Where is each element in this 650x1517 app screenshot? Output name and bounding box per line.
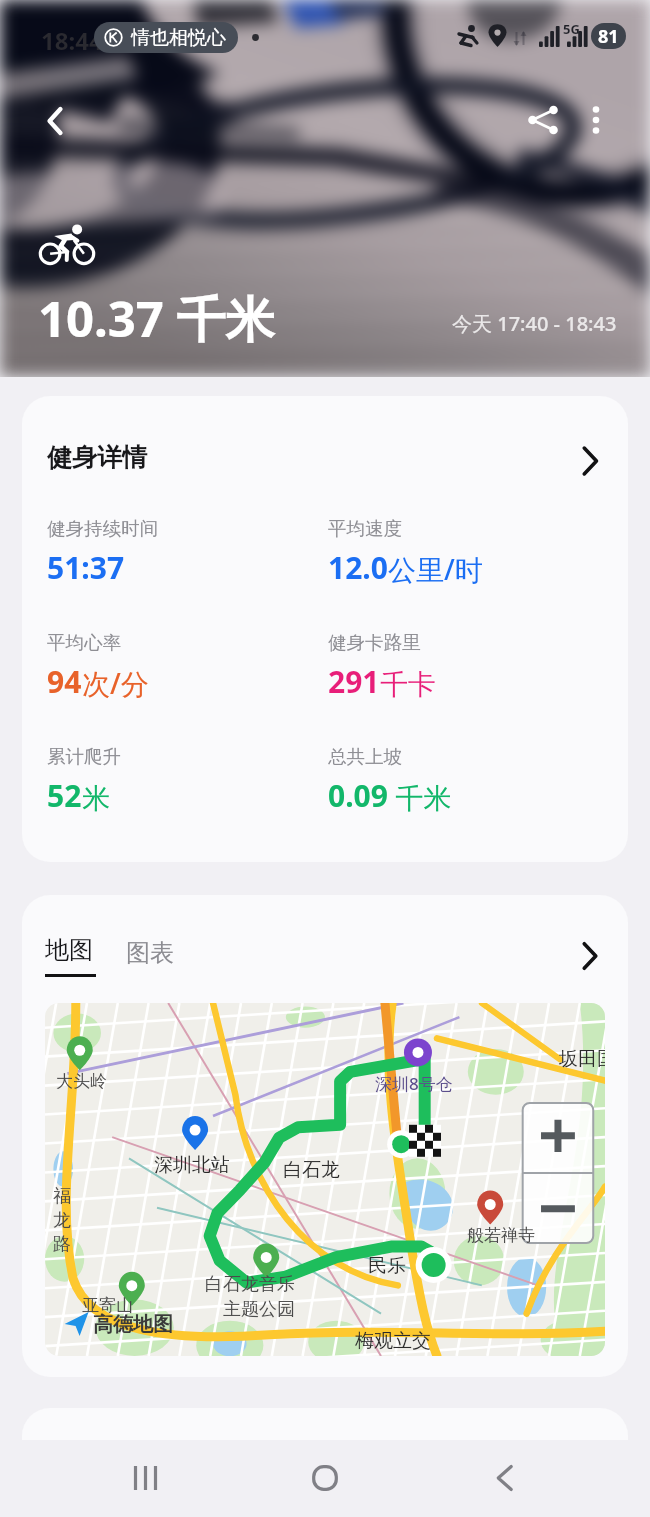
staticText: 地图 xyxy=(45,935,93,965)
staticText: 12.0 xyxy=(328,547,388,588)
staticText: 94 xyxy=(47,661,82,702)
staticText: 今天 17:40 - 18:43 xyxy=(452,310,617,337)
staticText: 健身详情 xyxy=(47,442,147,473)
staticText: 大头岭 xyxy=(56,1071,107,1092)
staticText: 累计爬升 xyxy=(47,745,121,768)
staticText: 公里/时 xyxy=(388,550,483,588)
staticText: 深圳8号仓 xyxy=(375,1072,453,1095)
staticText: 平均心率 xyxy=(47,631,121,654)
staticText: 51:37 xyxy=(47,547,125,588)
staticText: 健身卡路里 xyxy=(328,631,421,654)
staticText: 米 xyxy=(82,781,110,816)
staticText: 坂田国 xyxy=(559,1047,605,1071)
staticText: 10.37 千米 xyxy=(38,285,275,352)
button[interactable]: Recent apps xyxy=(105,1449,185,1507)
staticText: 梅观立交 xyxy=(355,1329,431,1353)
button[interactable]: 健身详情 xyxy=(22,396,628,862)
staticText: 千卡 xyxy=(380,667,436,702)
staticText: 千米 xyxy=(388,778,452,816)
staticText: 般若禅寺 xyxy=(467,1225,535,1246)
staticText: 0.09 xyxy=(328,775,388,816)
staticText: 民乐 xyxy=(368,1254,406,1278)
button[interactable]: Back xyxy=(465,1449,545,1507)
staticText: 情也相悦心 xyxy=(131,26,226,50)
staticText: 白石龙 xyxy=(283,1158,340,1182)
staticText: 亚寄山 xyxy=(82,1295,133,1316)
button[interactable]: More options xyxy=(573,97,619,143)
staticText: 18:44 xyxy=(41,24,103,57)
button[interactable]: Share xyxy=(520,97,566,143)
staticText: 52 xyxy=(47,775,82,816)
staticText: 深圳北站 xyxy=(154,1153,230,1177)
staticText: 龙 xyxy=(53,1209,71,1232)
staticText: 291 xyxy=(328,661,380,702)
staticText: 次/分 xyxy=(82,664,149,702)
button[interactable] xyxy=(22,1408,628,1468)
staticText: 平均速度 xyxy=(328,517,402,540)
button[interactable]: 地图 xyxy=(45,935,96,977)
staticText: 主题公园 xyxy=(223,1298,295,1321)
staticText: 健身持续时间 xyxy=(47,517,158,540)
staticText: 白石龙音乐 xyxy=(205,1273,295,1296)
staticText: 总共上坡 xyxy=(328,745,402,768)
staticText: 路 xyxy=(53,1233,71,1256)
button[interactable]: 图表 xyxy=(126,938,174,968)
button[interactable]: Route map xyxy=(45,1003,605,1356)
staticText: 81 xyxy=(598,24,619,49)
staticText: 福 xyxy=(53,1185,71,1208)
staticText: 5G xyxy=(563,20,580,38)
button[interactable]: Back xyxy=(32,98,78,144)
staticText: 高德地图 xyxy=(93,1312,173,1337)
button[interactable]: Home xyxy=(285,1449,365,1507)
